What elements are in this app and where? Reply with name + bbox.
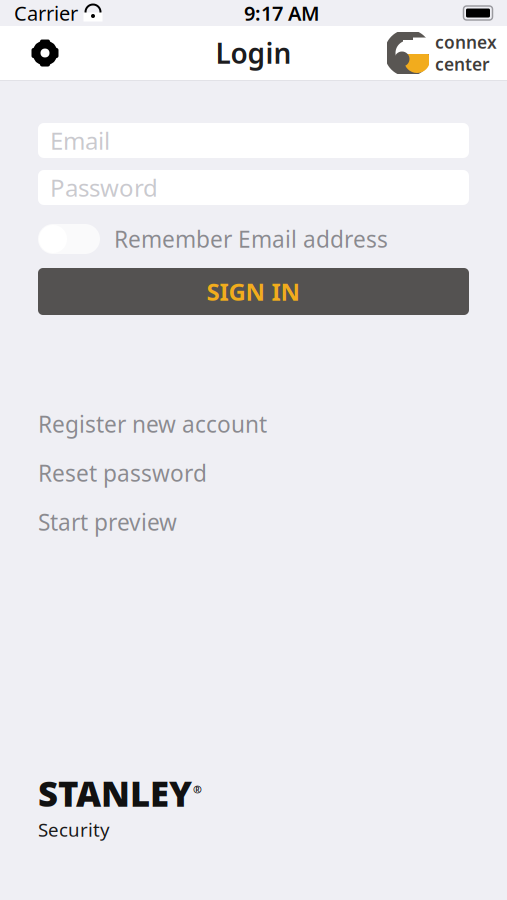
button[interactable]: SIGN IN xyxy=(38,268,469,315)
staticText: Reset password xyxy=(38,458,207,488)
button[interactable]: Connex Center xyxy=(387,30,507,76)
staticText: ® xyxy=(193,782,202,796)
staticText: Password xyxy=(50,172,158,203)
staticText: Start preview xyxy=(38,507,177,537)
button[interactable]: Settings xyxy=(18,30,72,76)
staticText: Login xyxy=(215,34,291,72)
button[interactable]: Remember Email address xyxy=(38,222,469,256)
staticText: Carrier xyxy=(14,0,78,26)
staticText: SIGN IN xyxy=(206,276,300,307)
button[interactable]: Reset password xyxy=(38,459,469,487)
staticText: Email xyxy=(50,125,110,156)
staticText: connex xyxy=(435,30,497,53)
button[interactable]: Register new account xyxy=(38,410,469,438)
staticText: STANLEY xyxy=(38,770,192,816)
staticText: Security xyxy=(38,817,110,842)
staticText: Register new account xyxy=(38,409,267,439)
staticText: Remember Email address xyxy=(114,224,388,254)
button[interactable]: Start preview xyxy=(38,508,469,536)
staticText: center xyxy=(435,52,490,75)
staticText: 9:17 AM xyxy=(244,0,320,26)
